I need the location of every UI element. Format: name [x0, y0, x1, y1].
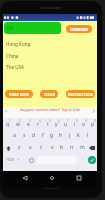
button[interactable]: a: [9, 130, 19, 142]
staticText: 2: [19, 119, 21, 123]
button[interactable]: j: [65, 130, 74, 142]
staticText: o: [82, 121, 86, 128]
staticText: 7: [67, 119, 69, 123]
button[interactable]: 4: [33, 118, 43, 130]
button[interactable]: h: [56, 130, 65, 142]
staticText: 9: [85, 119, 87, 123]
button[interactable]: Home: [44, 172, 60, 184]
button[interactable]: 8: [70, 118, 79, 130]
staticText: v: [51, 144, 54, 151]
button[interactable]: Back: [17, 172, 33, 184]
button[interactable]: s: [19, 130, 29, 142]
staticText: a: [13, 132, 16, 139]
staticText: z: [18, 144, 21, 151]
button[interactable]: f: [38, 130, 47, 142]
staticText: INSTRUCTION: [68, 92, 93, 97]
button[interactable]: Suggest contact name? Tap to hide: [3, 107, 97, 118]
staticText: China: [6, 53, 19, 59]
staticText: l: [87, 132, 89, 139]
button[interactable]: CONFIRM: [66, 25, 92, 33]
staticText: ?123: [6, 157, 14, 162]
button[interactable]: m: [77, 142, 87, 154]
button[interactable]: Recent apps: [71, 172, 87, 184]
button[interactable]: 9: [79, 118, 88, 130]
button[interactable]: c: [36, 142, 47, 154]
button[interactable]: Shift: [3, 142, 14, 154]
button[interactable]: 7: [61, 118, 70, 130]
staticText: i: [74, 121, 76, 128]
staticText: 8: [76, 119, 78, 123]
staticText: x: [29, 144, 32, 151]
button[interactable]: Voice input: [27, 154, 36, 166]
staticText: d: [32, 132, 36, 139]
staticText: 4: [39, 119, 41, 123]
button[interactable]: 0: [88, 118, 97, 130]
staticText: s: [23, 132, 26, 139]
staticText: q: [6, 121, 10, 128]
staticText: Suggest contact name? Tap to hide: [20, 107, 81, 112]
staticText: 0: [94, 119, 96, 123]
button[interactable]: The USA: [3, 63, 97, 73]
staticText: ,: [18, 155, 20, 162]
staticText: m: [80, 144, 85, 151]
staticText: f: [42, 132, 44, 139]
button[interactable]: g: [47, 130, 56, 142]
staticText: k: [77, 132, 80, 139]
button[interactable]: 2: [13, 118, 23, 130]
staticText: CONFIRM: [70, 27, 88, 32]
staticText: CLEAR: [44, 92, 55, 97]
button[interactable]: 6: [52, 118, 61, 130]
button[interactable]: Backspace: [87, 142, 97, 154]
button[interactable]: GRAB NOW: [5, 90, 33, 98]
button[interactable]: v: [47, 142, 57, 154]
button[interactable]: d: [29, 130, 38, 142]
staticText: g: [50, 132, 54, 139]
button[interactable]: k: [74, 130, 83, 142]
button[interactable]: x: [25, 142, 36, 154]
staticText: GRAB NOW: [9, 92, 29, 97]
staticText: n: [70, 144, 74, 151]
button[interactable]: China: [3, 52, 97, 62]
staticText: Hong Kong: [6, 41, 31, 47]
staticText: h: [59, 132, 63, 139]
staticText: w: [16, 121, 20, 128]
button[interactable]: CLEAR: [40, 90, 58, 98]
staticText: 5: [49, 119, 51, 123]
staticText: j: [69, 132, 71, 139]
button[interactable]: OK: [4, 22, 61, 34]
staticText: y: [55, 121, 58, 128]
staticText: t: [47, 121, 49, 128]
button[interactable]: ,: [14, 154, 23, 166]
staticText: p: [91, 121, 95, 128]
staticText: b: [60, 144, 64, 151]
staticText: 3: [29, 119, 31, 123]
staticText: e: [27, 121, 30, 128]
button[interactable]: ?123: [4, 154, 15, 166]
button[interactable]: l: [83, 130, 92, 142]
button[interactable]: Hong Kong: [3, 40, 97, 50]
button[interactable]: b: [57, 142, 67, 154]
button[interactable]: 5: [43, 118, 52, 130]
staticText: c: [40, 144, 43, 151]
button[interactable]: Enter: [88, 156, 96, 164]
staticText: 6: [58, 119, 60, 123]
button[interactable]: n: [67, 142, 77, 154]
button[interactable]: z: [14, 142, 25, 154]
staticText: 1: [9, 119, 11, 123]
staticText: .: [82, 155, 84, 162]
button[interactable]: 3: [23, 118, 33, 130]
staticText: u: [64, 121, 68, 128]
staticText: r: [37, 121, 40, 128]
button[interactable]: INSTRUCTION: [66, 90, 95, 98]
button[interactable]: 1: [3, 118, 13, 130]
button[interactable]: .: [78, 154, 87, 166]
staticText: OK: [7, 25, 14, 31]
staticText: The USA: [6, 64, 24, 70]
